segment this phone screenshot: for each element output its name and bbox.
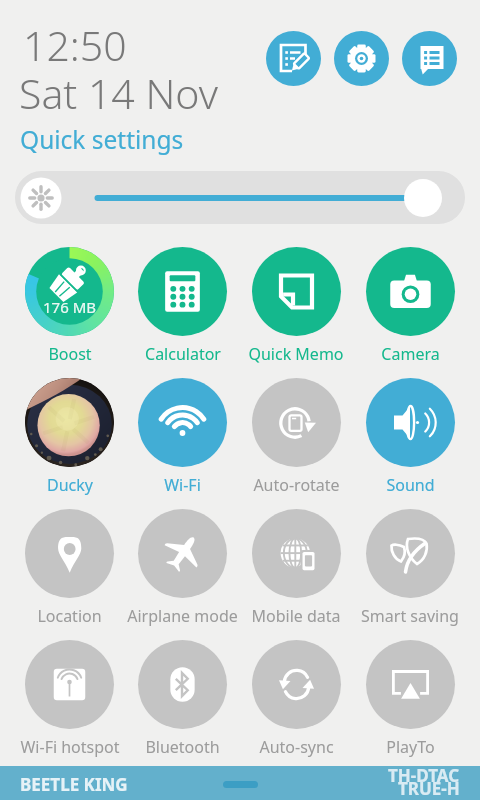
staticText: Camera xyxy=(381,343,440,365)
button[interactable]: Messages xyxy=(402,31,457,86)
button[interactable]: Auto-sync xyxy=(239,640,353,760)
button[interactable]: Location xyxy=(13,509,126,629)
staticText: Sound xyxy=(386,474,435,496)
button[interactable]: Auto-rotate xyxy=(239,378,353,498)
button[interactable]: Wi-Fi hotspot xyxy=(13,640,126,760)
button[interactable]: Drag handle xyxy=(223,781,258,788)
button[interactable]: Sound xyxy=(353,378,467,498)
staticText: Wi-Fi xyxy=(164,474,201,496)
staticText: Quick Memo xyxy=(248,343,344,365)
staticText: Calculator xyxy=(145,343,221,365)
staticText: Location xyxy=(37,605,102,627)
staticText: Auto-sync xyxy=(259,736,334,758)
button[interactable]: Mobile data xyxy=(239,509,353,629)
staticText: Sat 14 Nov xyxy=(19,65,218,121)
staticText: Smart saving xyxy=(361,605,459,627)
button[interactable]: Ducky xyxy=(13,378,126,498)
button[interactable]: Brightness xyxy=(15,171,465,224)
button[interactable]: Bluetooth xyxy=(126,640,239,760)
staticText: Wi-Fi hotspot xyxy=(20,736,120,758)
staticText: Boost xyxy=(48,343,92,365)
button[interactable]: Camera xyxy=(353,247,467,367)
staticText: PlayTo xyxy=(386,736,435,758)
button[interactable]: Calculator xyxy=(126,247,239,367)
button[interactable]: Quick memo xyxy=(266,31,321,86)
staticText: Mobile data xyxy=(251,605,341,627)
staticText: Ducky xyxy=(47,474,93,496)
staticText: Bluetooth xyxy=(145,736,220,758)
button[interactable]: Wi-Fi xyxy=(126,378,239,498)
staticText: BEETLE KING xyxy=(20,773,128,796)
staticText: TRUE-H xyxy=(398,777,460,800)
button[interactable]: 176 MB xyxy=(13,247,126,367)
button[interactable]: Settings xyxy=(334,31,389,86)
button[interactable]: Quick Memo xyxy=(239,247,353,367)
button[interactable]: Smart saving xyxy=(353,509,467,629)
button[interactable]: PlayTo xyxy=(353,640,467,760)
staticText: Quick settings xyxy=(20,123,184,156)
staticText: Auto-rotate xyxy=(253,474,340,496)
staticText: TH-DTAC xyxy=(388,764,460,787)
button[interactable]: Airplane mode xyxy=(126,509,239,629)
staticText: 176 MB xyxy=(43,297,96,317)
staticText: Airplane mode xyxy=(127,605,238,627)
staticText: 12:50 xyxy=(23,17,127,73)
